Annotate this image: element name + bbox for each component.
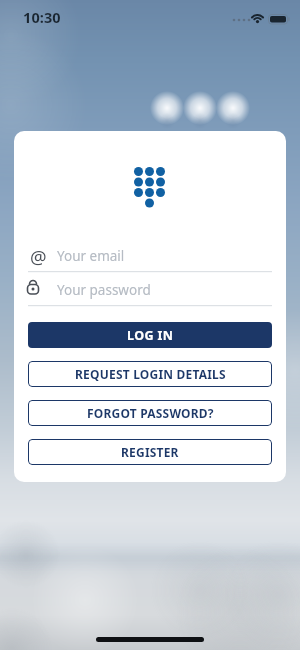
- staticText: Your password: [57, 281, 151, 299]
- button[interactable]: Your password: [24, 277, 272, 303]
- staticText: REGISTER: [121, 444, 179, 460]
- staticText: @: [30, 244, 47, 269]
- staticText: REQUEST LOGIN DETAILS: [75, 366, 226, 382]
- staticText: FORGOT PASSWORD?: [87, 405, 214, 421]
- button[interactable]: REGISTER: [28, 439, 272, 465]
- staticText: Your email: [57, 247, 125, 265]
- button[interactable]: @: [24, 243, 272, 269]
- staticText: 10:30: [23, 7, 61, 27]
- button[interactable]: REQUEST LOGIN DETAILS: [28, 361, 272, 387]
- button[interactable]: LOG IN: [28, 322, 272, 348]
- staticText: LOG IN: [127, 327, 174, 344]
- button[interactable]: FORGOT PASSWORD?: [28, 400, 272, 426]
